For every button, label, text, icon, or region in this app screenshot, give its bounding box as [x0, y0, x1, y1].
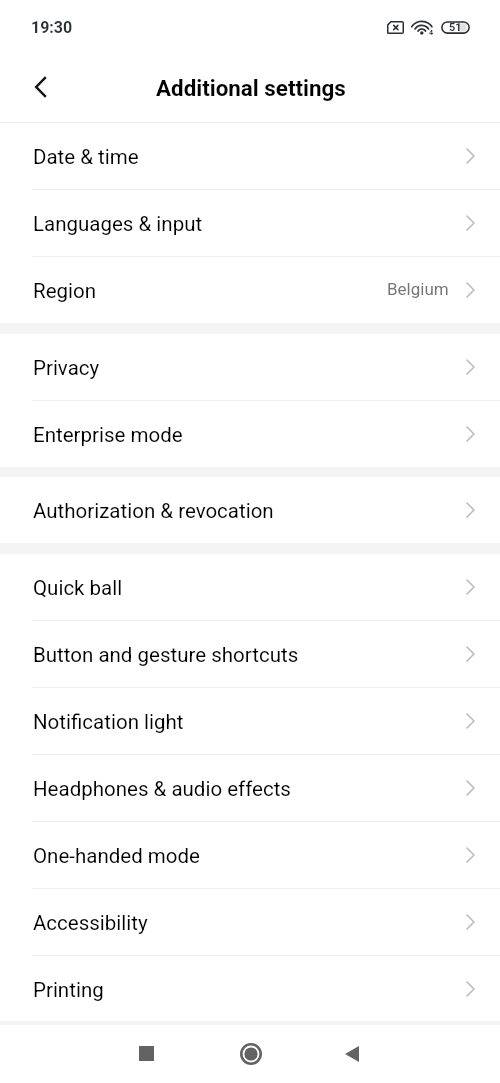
button[interactable]: Back	[329, 1031, 374, 1076]
button[interactable]: Region	[0, 257, 500, 323]
staticText: 19:30	[31, 18, 73, 37]
staticText: Accessibility	[33, 911, 148, 935]
staticText: Printing	[33, 978, 104, 1002]
staticText: Belgium	[387, 279, 449, 299]
staticText: Quick ball	[33, 576, 123, 600]
button[interactable]: Privacy	[0, 334, 500, 400]
staticText: 4	[429, 29, 434, 37]
button[interactable]: Printing	[0, 956, 500, 1021]
button[interactable]: Date & time	[0, 123, 500, 189]
button[interactable]: Languages & input	[0, 190, 500, 256]
staticText: Notification light	[33, 710, 184, 734]
button[interactable]: Notification light	[0, 688, 500, 754]
staticText: Headphones & audio effects	[33, 777, 291, 801]
staticText: One-handed mode	[33, 844, 200, 868]
button[interactable]: Quick ball	[0, 554, 500, 620]
button[interactable]: Enterprise mode	[0, 401, 500, 467]
staticText: Privacy	[33, 356, 100, 380]
button[interactable]: Accessibility	[0, 889, 500, 955]
button[interactable]: Recent apps	[124, 1031, 169, 1076]
staticText: Additional settings	[156, 75, 346, 101]
button[interactable]: Home	[228, 1031, 273, 1076]
staticText: Authorization & revocation	[33, 499, 274, 523]
staticText: 51	[449, 21, 462, 34]
button[interactable]: Headphones & audio effects	[0, 755, 500, 821]
staticText: Region	[33, 279, 97, 303]
staticText: Enterprise mode	[33, 423, 183, 447]
staticText: Date & time	[33, 145, 139, 169]
staticText: Languages & input	[33, 212, 203, 236]
button[interactable]: One-handed mode	[0, 822, 500, 888]
button[interactable]: Back	[20, 68, 62, 110]
button[interactable]: Button and gesture shortcuts	[0, 621, 500, 687]
staticText: Button and gesture shortcuts	[33, 643, 299, 667]
button[interactable]: Authorization & revocation	[0, 477, 500, 543]
